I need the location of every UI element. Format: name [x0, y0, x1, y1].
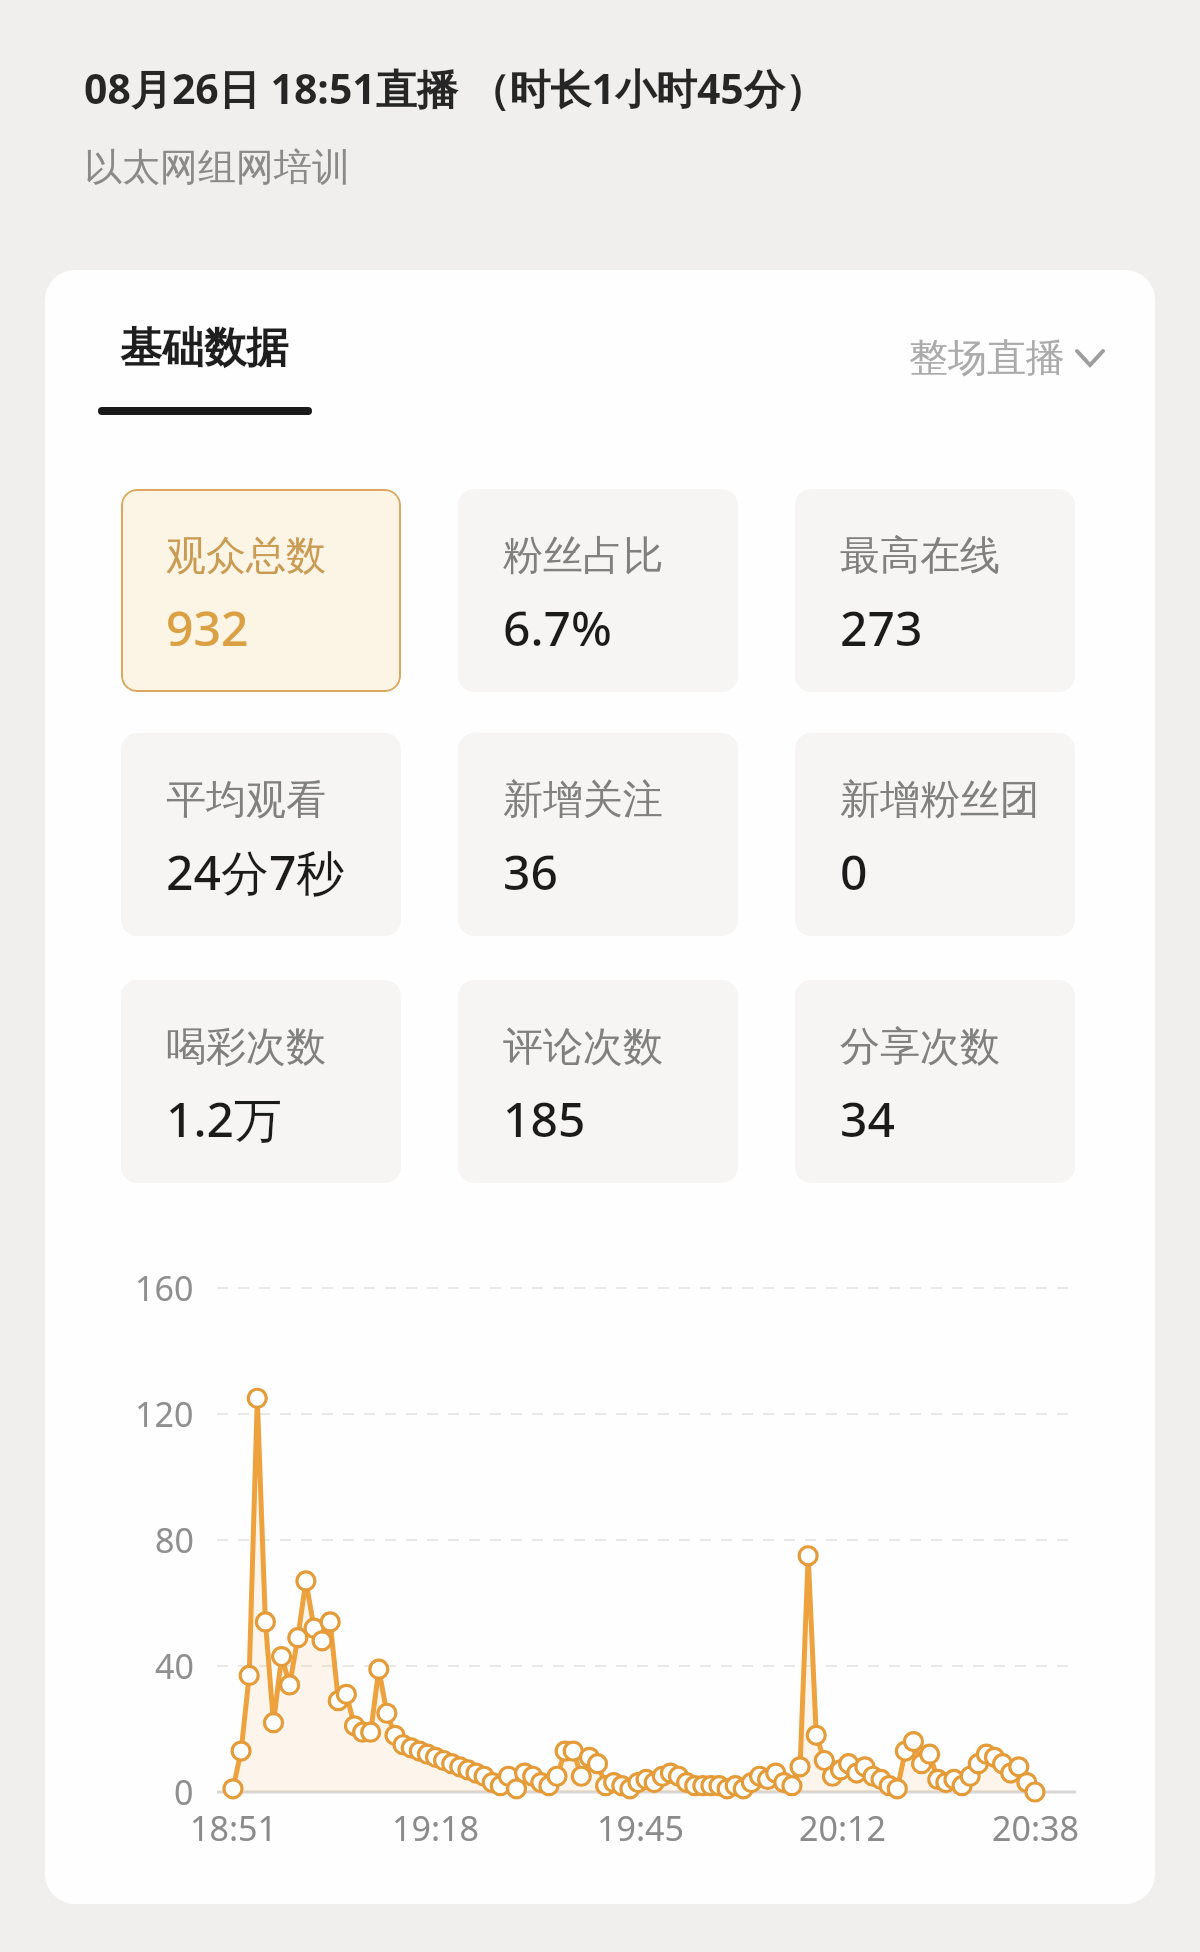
staticText: 19:45: [597, 1805, 684, 1851]
staticText: 整场直播: [909, 333, 1065, 382]
staticText: 20:38: [992, 1805, 1079, 1851]
button[interactable]: 粉丝占比: [458, 489, 738, 692]
button[interactable]: 新增关注: [458, 733, 738, 936]
staticText: 0: [840, 839, 868, 904]
staticText: 273: [840, 595, 923, 660]
staticText: 1.2万: [166, 1086, 282, 1152]
staticText: 粉丝占比: [503, 530, 663, 580]
staticText: 19:18: [392, 1805, 479, 1851]
staticText: 24分7秒: [166, 839, 345, 905]
button[interactable]: 观众总数: [121, 489, 401, 692]
staticText: 分享次数: [840, 1021, 1000, 1071]
button[interactable]: 平均观看: [121, 733, 401, 936]
staticText: 最高在线: [840, 530, 1000, 580]
staticText: 20:12: [799, 1805, 886, 1851]
button[interactable]: 新增粉丝团: [795, 733, 1075, 936]
staticText: 新增关注: [503, 774, 663, 824]
staticText: 平均观看: [166, 774, 326, 824]
staticText: 120: [135, 1391, 194, 1437]
staticText: 新增粉丝团: [840, 774, 1040, 824]
staticText: 基础数据: [120, 322, 288, 375]
staticText: 08月26日 18:51直播 （时长1小时45分）: [84, 60, 826, 116]
staticText: 36: [503, 839, 558, 904]
button[interactable]: 基础数据: [98, 310, 358, 420]
staticText: 评论次数: [503, 1021, 663, 1071]
button[interactable]: 喝彩次数: [121, 980, 401, 1183]
staticText: 160: [135, 1265, 194, 1311]
staticText: 6.7%: [503, 595, 612, 660]
staticText: 80: [155, 1517, 194, 1563]
staticText: 18:51: [190, 1805, 277, 1851]
staticText: 40: [155, 1643, 194, 1689]
staticText: 34: [840, 1086, 895, 1151]
button[interactable]: 整场直播: [909, 333, 1103, 382]
staticText: 932: [166, 595, 249, 660]
staticText: 以太网组网培训: [84, 143, 350, 191]
staticText: 观众总数: [166, 530, 326, 580]
staticText: 185: [503, 1086, 586, 1151]
button[interactable]: 最高在线: [795, 489, 1075, 692]
staticText: 喝彩次数: [166, 1021, 326, 1071]
button[interactable]: 分享次数: [795, 980, 1075, 1183]
button[interactable]: 评论次数: [458, 980, 738, 1183]
staticText: 0: [174, 1769, 194, 1815]
